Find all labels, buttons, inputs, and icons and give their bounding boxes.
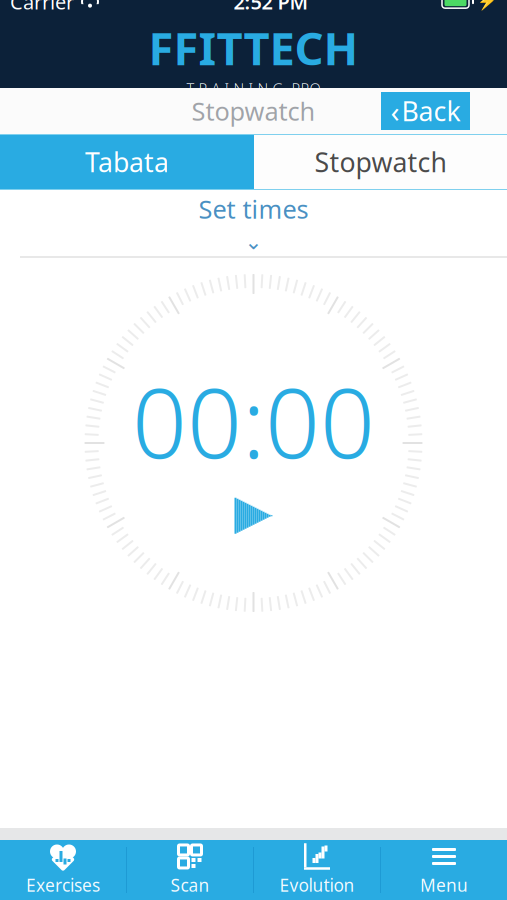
staticText: ⚡	[477, 0, 497, 11]
staticText: ⌄	[244, 230, 262, 254]
staticText: Set times	[198, 192, 308, 226]
staticText: Scan	[170, 873, 209, 896]
staticText: 2:52 PM	[233, 0, 308, 15]
staticText: Carrier	[10, 0, 74, 15]
staticText: ‹	[390, 91, 399, 130]
staticText: 00:00	[132, 357, 375, 485]
staticText: T R A I N I N G PRO	[186, 79, 320, 98]
button[interactable]: Evolution	[254, 840, 380, 900]
staticText: Exercises	[26, 873, 100, 896]
button[interactable]: ‹	[381, 92, 470, 130]
button[interactable]: Tabata	[0, 134, 254, 190]
staticText: Tabata	[85, 144, 169, 180]
button[interactable]: Exercises	[0, 840, 126, 900]
button[interactable]: Start	[223, 491, 283, 541]
staticText: Stopwatch	[314, 144, 446, 180]
button[interactable]: Scan	[127, 840, 253, 900]
staticText: Stopwatch	[191, 94, 315, 128]
button[interactable]: Menu	[381, 840, 507, 900]
staticText: Evolution	[279, 873, 354, 896]
button[interactable]: Set times	[0, 190, 507, 256]
staticText: Menu	[420, 873, 468, 896]
staticText: Back	[401, 93, 460, 129]
staticText: FFITTECH	[148, 18, 358, 78]
button[interactable]: Stopwatch	[254, 134, 507, 190]
